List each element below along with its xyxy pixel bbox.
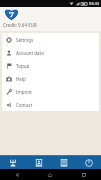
button[interactable]: Power: [76, 156, 101, 169]
button[interactable]: Back: [0, 169, 33, 180]
staticText: 03:33: [89, 1, 100, 6]
button[interactable]: Account: [26, 156, 51, 169]
button[interactable]: Account data: [2, 46, 99, 59]
staticText: Contact: [16, 102, 33, 108]
button[interactable]: Network: [0, 156, 26, 169]
button[interactable]: Settings: [2, 33, 99, 46]
other: App logo: [4, 9, 19, 20]
button[interactable]: Recents: [67, 169, 101, 180]
staticText: Account data: [16, 50, 44, 56]
staticText: Help: [16, 76, 26, 82]
staticText: Settings: [16, 37, 34, 43]
button[interactable]: Invoices: [51, 156, 76, 169]
button[interactable]: Topup: [2, 59, 99, 72]
staticText: Imprint: [16, 89, 32, 95]
button[interactable]: Contact: [2, 98, 99, 111]
staticText: Credit: 9.64 EUR: [3, 22, 37, 28]
button[interactable]: Imprint: [2, 85, 99, 98]
button[interactable]: Help: [2, 72, 99, 85]
staticText: Topup: [16, 63, 30, 69]
button[interactable]: Home: [33, 169, 67, 180]
